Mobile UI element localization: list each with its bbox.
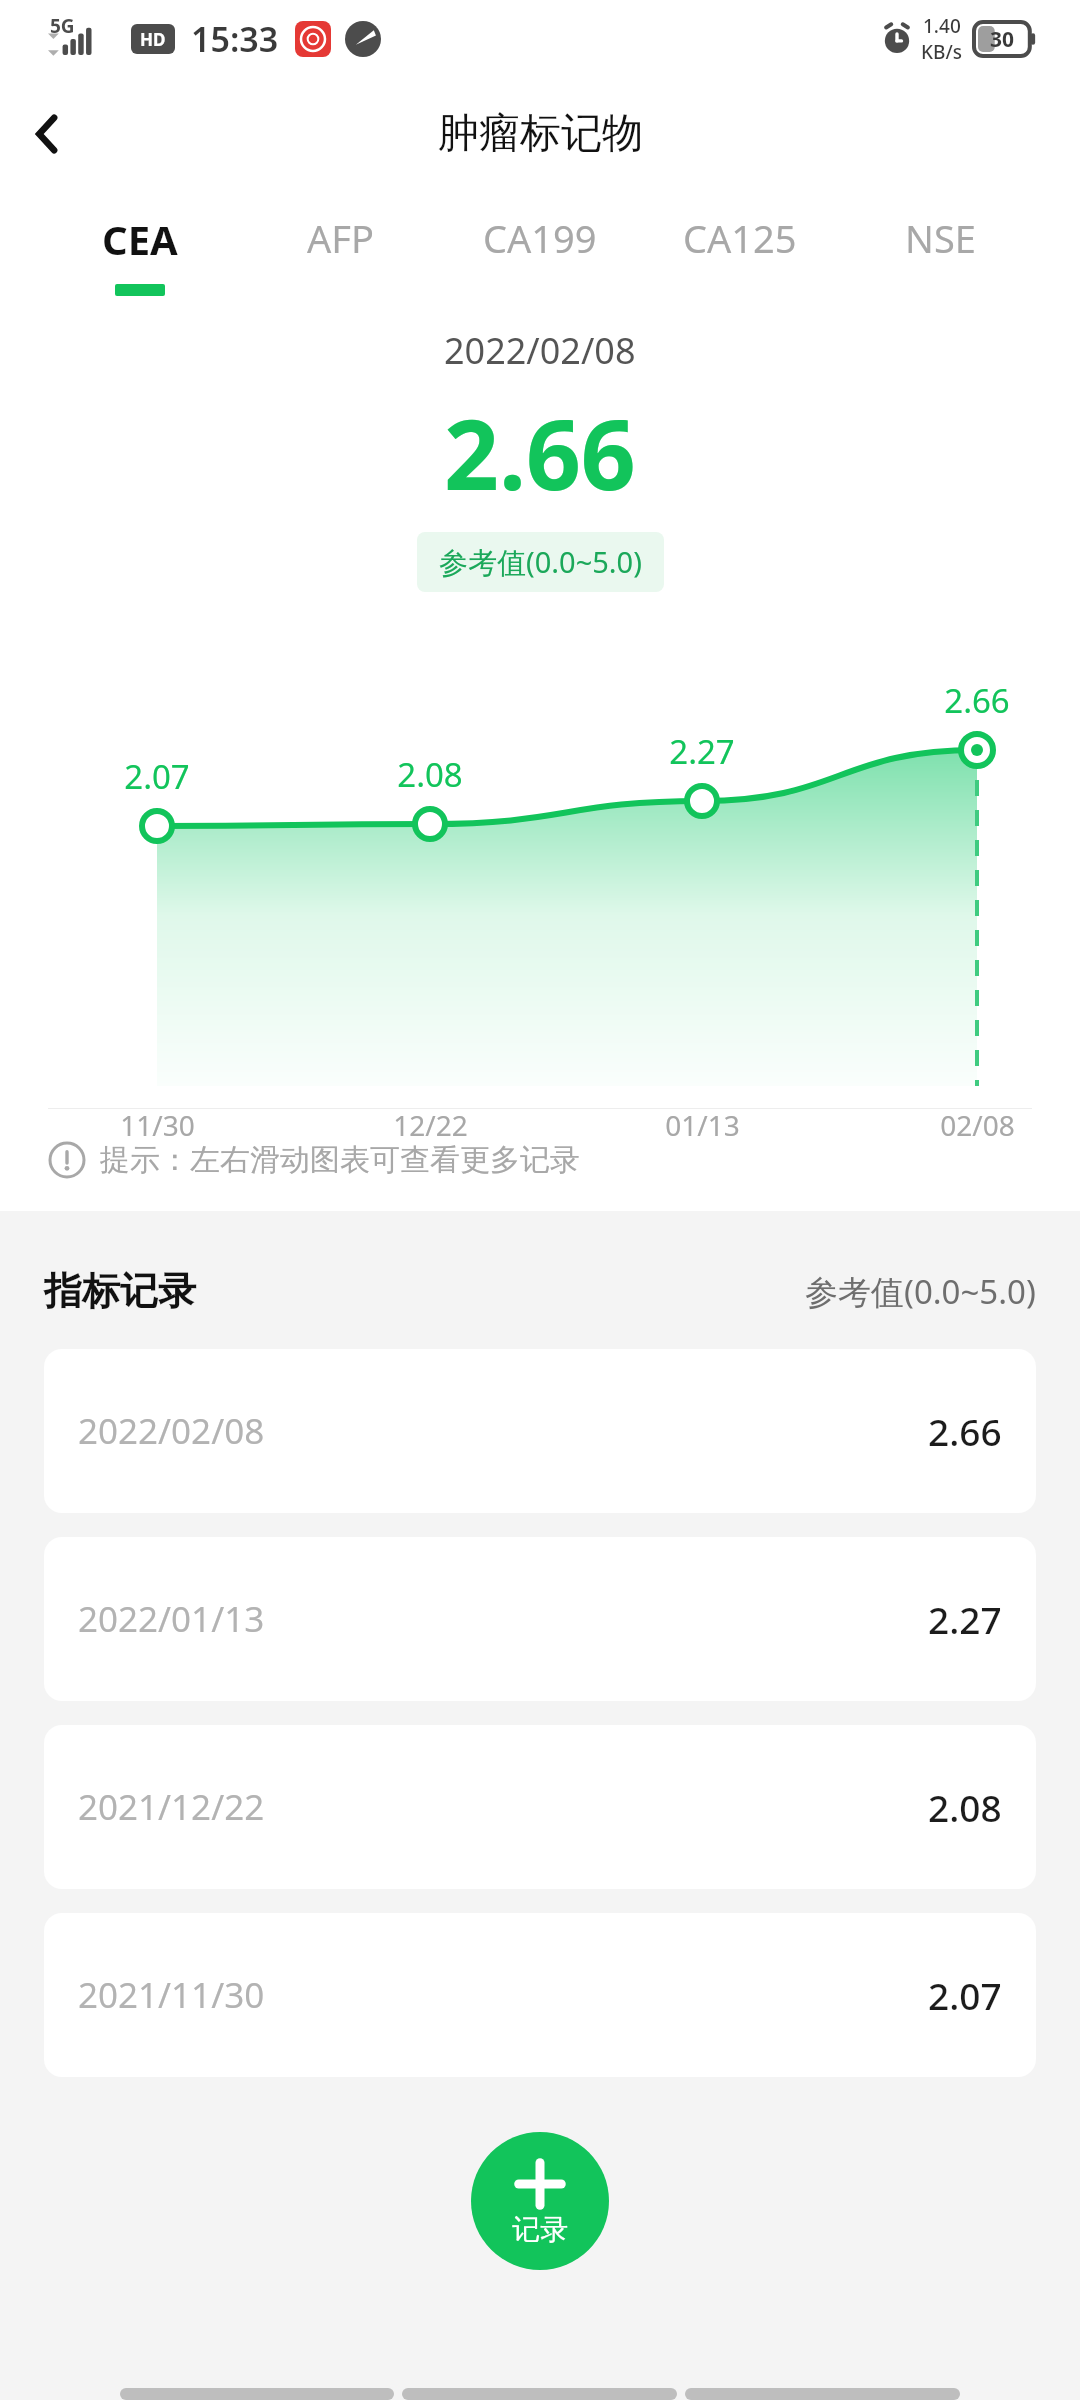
staticText: 记录 <box>512 2212 568 2247</box>
staticText: 2022/01/13 <box>78 1595 265 1643</box>
staticText: 参考值(0.0~5.0) <box>805 1269 1036 1314</box>
staticText: 2.66 <box>944 678 1010 723</box>
button[interactable]: 记录 <box>471 2132 609 2270</box>
button[interactable]: CA199 <box>440 190 640 300</box>
button[interactable]: 2022/01/13 <box>44 1537 1036 1701</box>
staticText: 2.66 <box>928 1406 1002 1456</box>
staticText: 02/08 <box>940 1106 1015 1144</box>
staticText: CEA <box>102 212 178 266</box>
staticText: 2021/11/30 <box>78 1971 265 2019</box>
staticText: CA125 <box>683 212 797 264</box>
staticText: 11/30 <box>120 1106 195 1144</box>
staticText: 12/22 <box>393 1106 468 1144</box>
button[interactable]: 2021/11/30 <box>44 1913 1036 2077</box>
staticText: 2.27 <box>928 1594 1002 1644</box>
staticText: 01/13 <box>665 1106 740 1144</box>
staticText: 2.27 <box>669 729 735 774</box>
staticText: HD <box>140 28 166 51</box>
staticText: NSE <box>905 212 976 264</box>
button[interactable]: CEA <box>40 190 240 300</box>
staticText: 参考值(0.0~5.0) <box>439 542 642 582</box>
button[interactable]: AFP <box>240 190 440 300</box>
staticText: 2.08 <box>928 1782 1002 1832</box>
staticText: 2022/02/08 <box>78 1407 265 1455</box>
staticText: KB/s <box>921 39 962 65</box>
staticText: 30 <box>990 25 1015 54</box>
button[interactable]: 2022/02/08 <box>44 1349 1036 1513</box>
button[interactable]: Back <box>0 86 96 182</box>
button[interactable]: CA125 <box>640 190 840 300</box>
staticText: 5G <box>50 13 75 39</box>
staticText: 2.07 <box>124 754 190 799</box>
staticText: 15:33 <box>191 16 279 62</box>
staticText: 2021/12/22 <box>78 1783 265 1831</box>
staticText: 2.08 <box>397 752 463 797</box>
button[interactable]: NSE <box>840 190 1040 300</box>
button[interactable]: 2021/12/22 <box>44 1725 1036 1889</box>
staticText: 2.66 <box>444 387 636 518</box>
staticText: 1.40 <box>923 13 961 39</box>
staticText: 2022/02/08 <box>444 326 636 375</box>
staticText: CA199 <box>483 212 597 264</box>
staticText: 提示：左右滑动图表可查看更多记录 <box>100 1141 580 1179</box>
staticText: 肿瘤标记物 <box>438 108 643 160</box>
staticText: AFP <box>307 212 374 264</box>
staticText: 指标记录 <box>44 1267 196 1315</box>
staticText: 2.07 <box>928 1970 1002 2020</box>
